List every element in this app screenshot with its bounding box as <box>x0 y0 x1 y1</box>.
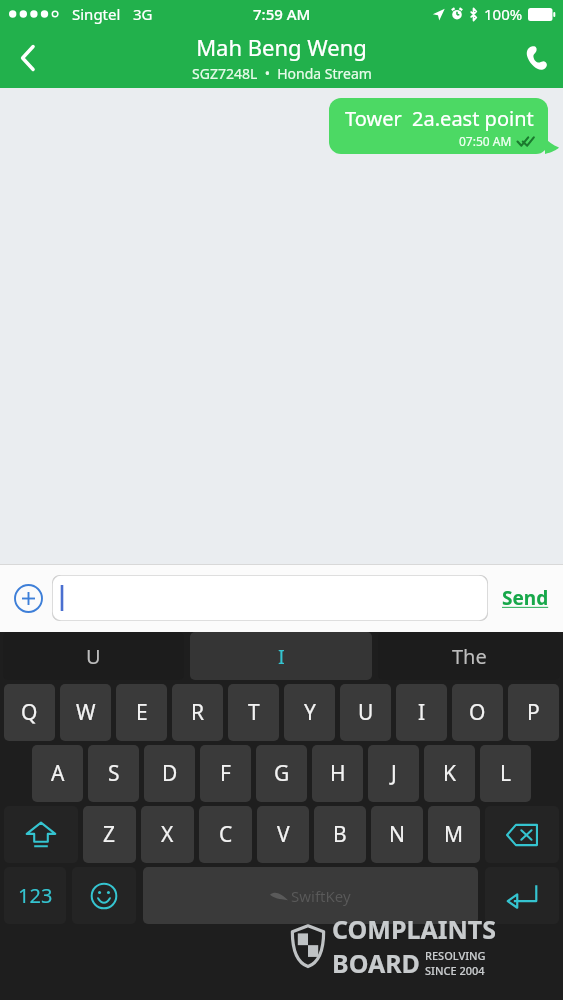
staticText: Singtel <box>72 4 121 24</box>
staticText: SwiftKey <box>291 886 351 906</box>
button[interactable]: Back <box>0 27 56 88</box>
staticText: 123 <box>18 882 53 909</box>
staticText: 3G <box>133 4 153 24</box>
staticText: RESOLVING <box>425 948 486 963</box>
button[interactable]: Y <box>284 684 335 741</box>
staticText: B <box>333 820 347 849</box>
button[interactable]: B <box>314 806 366 863</box>
staticText: The <box>452 643 487 670</box>
button[interactable]: Z <box>83 806 136 863</box>
staticText: SGZ7248L • Honda Stream <box>192 64 372 83</box>
button[interactable]: P <box>508 684 559 741</box>
staticText: U <box>358 698 374 727</box>
staticText: F <box>220 759 231 788</box>
button[interactable]: Backspace <box>485 806 559 863</box>
button[interactable]: F <box>200 745 251 802</box>
button[interactable]: U <box>340 684 391 741</box>
staticText: Z <box>103 820 116 849</box>
button[interactable]: W <box>60 684 111 741</box>
staticText: U <box>86 643 101 670</box>
staticText: R <box>191 698 205 727</box>
button[interactable]: U <box>3 632 184 680</box>
button[interactable]: J <box>368 745 419 802</box>
button[interactable]: X <box>141 806 194 863</box>
button[interactable]: The <box>378 632 560 680</box>
staticText: BOARD <box>332 946 420 980</box>
staticText: COMPLAINTS <box>332 912 496 946</box>
button[interactable]: Tower 2a.east point <box>329 98 548 154</box>
button[interactable]: K <box>424 745 475 802</box>
button[interactable]: A <box>32 745 83 802</box>
staticText: O <box>469 698 486 727</box>
button[interactable]: V <box>257 806 309 863</box>
staticText: M <box>444 820 464 849</box>
staticText: J <box>391 759 397 788</box>
button[interactable]: M <box>428 806 480 863</box>
button[interactable]: Add attachment <box>10 580 46 616</box>
staticText: G <box>274 759 290 788</box>
button[interactable]: I <box>396 684 447 741</box>
staticText: 100% <box>484 4 523 24</box>
button[interactable]: H <box>312 745 363 802</box>
staticText: Q <box>21 698 38 727</box>
button[interactable]: O <box>452 684 503 741</box>
button[interactable]: SwiftKey <box>143 867 478 924</box>
staticText: N <box>389 820 405 849</box>
staticText: I <box>278 643 285 670</box>
staticText: Mah Beng Weng <box>196 32 367 62</box>
button[interactable]: S <box>88 745 139 802</box>
button[interactable]: Shift <box>4 806 78 863</box>
staticText: C <box>219 820 233 849</box>
staticText: E <box>136 698 148 727</box>
button[interactable]: Q <box>4 684 55 741</box>
button[interactable]: Call <box>507 27 563 88</box>
button[interactable]: R <box>172 684 223 741</box>
button[interactable]: Send <box>498 577 553 619</box>
staticText: T <box>248 698 260 727</box>
button[interactable]: E <box>116 684 167 741</box>
button[interactable]: C <box>199 806 252 863</box>
button[interactable]: T <box>228 684 279 741</box>
staticText: 07:50 AM <box>459 133 512 149</box>
staticText: X <box>161 820 174 849</box>
button[interactable]: Emoji <box>72 867 136 924</box>
staticText: L <box>500 759 512 788</box>
staticText: W <box>76 698 96 727</box>
staticText: Tower 2a.east point <box>345 105 534 132</box>
button[interactable]: N <box>371 806 423 863</box>
staticText: 7:59 AM <box>253 4 311 24</box>
button[interactable]: D <box>144 745 195 802</box>
staticText: P <box>527 698 540 727</box>
staticText: H <box>330 759 346 788</box>
staticText: D <box>162 759 178 788</box>
button[interactable]: Mah Beng Weng <box>79 32 484 83</box>
button[interactable]: G <box>256 745 307 802</box>
button[interactable]: L <box>480 745 531 802</box>
staticText: I <box>418 698 426 727</box>
staticText: Send <box>502 585 549 611</box>
staticText: S <box>108 759 120 788</box>
staticText: K <box>443 759 456 788</box>
staticText: SINCE 2004 <box>425 963 485 978</box>
button[interactable]: 123 <box>4 867 66 924</box>
button[interactable] <box>52 575 488 621</box>
staticText: Y <box>304 698 316 727</box>
staticText: A <box>51 759 65 788</box>
button[interactable]: I <box>190 632 372 680</box>
button[interactable]: Enter <box>485 867 559 924</box>
staticText: V <box>277 820 290 849</box>
